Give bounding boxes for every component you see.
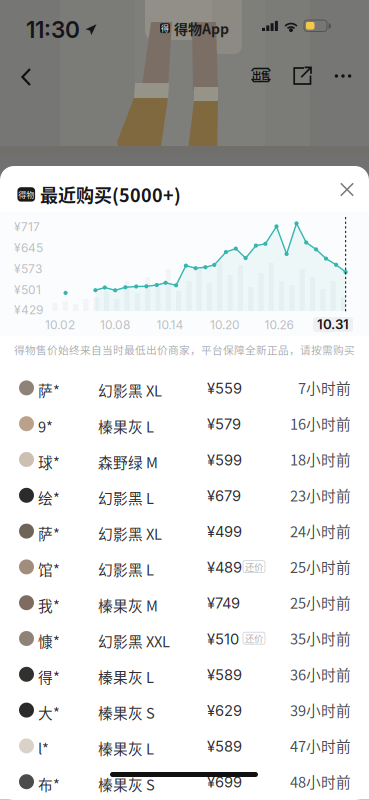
staticText: 10.20 — [210, 318, 240, 332]
staticText: 馆* — [38, 559, 60, 580]
staticText: ¥499 — [207, 523, 242, 540]
staticText: ¥749 — [207, 594, 240, 612]
staticText: 得 — [161, 22, 169, 34]
button[interactable]: 关闭 — [330, 172, 364, 206]
staticText: ¥699 — [207, 773, 242, 791]
staticText: 10.26 — [264, 318, 293, 332]
staticText: 得物App — [174, 18, 229, 38]
staticText: 萨* — [38, 523, 60, 544]
staticText: 森野绿 M — [98, 451, 158, 472]
staticText: 10.08 — [100, 318, 130, 332]
staticText: 23小时前 — [290, 484, 351, 506]
staticText: 47小时前 — [290, 735, 351, 756]
staticText: ¥489 — [207, 559, 242, 576]
button[interactable]: 我* — [0, 585, 369, 621]
staticText: 幻影黑 XL — [98, 380, 162, 401]
staticText: 48小时前 — [290, 771, 351, 792]
button[interactable]: 萨* — [0, 513, 369, 549]
staticText: 36小时前 — [290, 663, 351, 685]
staticText: 24小时前 — [290, 520, 351, 541]
button[interactable]: 分享 — [285, 58, 321, 94]
staticText: 10.31 — [317, 316, 349, 332]
staticText: 35小时前 — [290, 628, 351, 649]
staticText: ¥589 — [207, 666, 242, 684]
staticText: ¥589 — [207, 738, 242, 755]
staticText: ¥510 — [207, 630, 239, 648]
staticText: 25小时前 — [290, 556, 351, 577]
staticText: 9* — [38, 415, 53, 437]
button[interactable]: 更多 — [325, 58, 361, 94]
button[interactable]: 返回 — [6, 57, 46, 97]
staticText: 榛果灰 L — [98, 415, 154, 437]
staticText: ¥429 — [14, 303, 43, 317]
staticText: 我* — [38, 594, 60, 616]
staticText: 幻影黑 L — [98, 487, 154, 508]
staticText: 还价 — [245, 560, 263, 573]
staticText: ¥573 — [14, 262, 42, 276]
staticText: 18小时前 — [290, 449, 351, 470]
button[interactable]: 布* — [0, 764, 369, 800]
staticText: ¥501 — [14, 283, 41, 297]
button[interactable]: 9* — [0, 406, 369, 442]
staticText: ¥579 — [207, 415, 241, 433]
staticText: 11:30 — [26, 16, 80, 43]
staticText: l* — [38, 738, 49, 759]
button[interactable]: l* — [0, 728, 369, 764]
staticText: ¥599 — [207, 451, 242, 469]
staticText: 得* — [38, 666, 60, 687]
staticText: 10.14 — [156, 318, 183, 332]
staticText: 布* — [38, 773, 60, 795]
staticText: 出售 — [252, 68, 270, 82]
staticText: ¥645 — [14, 241, 43, 255]
staticText: 还价 — [245, 631, 263, 645]
staticText: 绘* — [38, 487, 60, 508]
staticText: 萨* — [38, 380, 60, 401]
staticText: 幻影黑 L — [98, 559, 154, 580]
button[interactable]: 出售 — [243, 58, 279, 94]
staticText: 榛果灰 S — [98, 773, 155, 795]
button[interactable]: 球* — [0, 442, 369, 477]
button[interactable]: 慷* — [0, 621, 369, 656]
button[interactable]: 得* — [0, 656, 369, 692]
staticText: 球* — [38, 451, 60, 472]
staticText: 16小时前 — [290, 413, 351, 434]
staticText: 幻影黑 XL — [98, 523, 162, 544]
staticText: ¥629 — [207, 702, 242, 719]
staticText: 7小时前 — [298, 377, 351, 398]
staticText: 最近购买(5000+) — [40, 181, 181, 207]
button[interactable]: 大* — [0, 692, 369, 728]
staticText: 慷* — [38, 630, 60, 651]
staticText: 榛果灰 M — [98, 594, 158, 616]
staticText: 39小时前 — [290, 699, 351, 720]
staticText: ¥717 — [14, 220, 40, 234]
staticText: 榛果灰 L — [98, 666, 154, 687]
staticText: 得物 — [18, 189, 34, 200]
staticText: 10.02 — [45, 318, 75, 332]
button[interactable]: 馆* — [0, 549, 369, 585]
staticText: 大* — [38, 702, 60, 723]
staticText: ¥559 — [207, 380, 242, 397]
button[interactable]: 萨* — [0, 370, 369, 406]
staticText: 榛果灰 L — [98, 738, 154, 759]
staticText: 榛果灰 S — [98, 702, 155, 723]
staticText: 幻影黑 XXL — [98, 630, 170, 651]
staticText: ¥679 — [207, 487, 241, 505]
button[interactable]: 绘* — [0, 477, 369, 513]
staticText: 25小时前 — [290, 592, 351, 613]
staticText: 得物售价始终来自当时最低出价商家，平台保障全新正品，请按需购买 — [14, 342, 355, 357]
